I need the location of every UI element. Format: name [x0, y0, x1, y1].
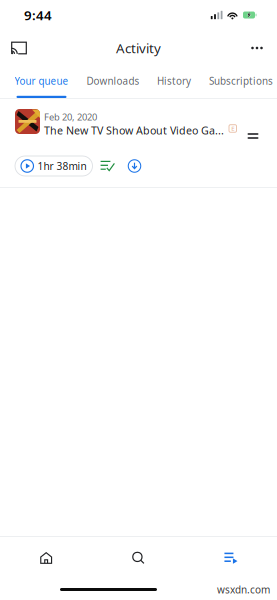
button[interactable]: Reorder: [244, 121, 262, 151]
button[interactable]: Added to queue: [95, 156, 119, 176]
staticText: wsxdn.com: [217, 583, 270, 596]
staticText: E: [231, 124, 234, 133]
button[interactable]: Your queue: [0, 66, 83, 98]
button[interactable]: Activity: [185, 537, 277, 579]
button[interactable]: Downloads: [83, 66, 143, 98]
staticText: Activity: [116, 39, 161, 57]
button[interactable]: 1hr 38min: [15, 156, 92, 176]
staticText: Feb 20, 2020: [44, 110, 97, 123]
button[interactable]: Subscriptions: [205, 66, 277, 98]
button[interactable]: Search: [92, 537, 185, 579]
staticText: 9:44: [24, 6, 52, 24]
staticText: Downloads: [86, 74, 139, 88]
button[interactable]: Cast: [1, 30, 37, 66]
button[interactable]: More options: [239, 30, 275, 66]
staticText: The New TV Show About Video Ga...: [44, 123, 224, 138]
button[interactable]: Download: [123, 156, 145, 176]
staticText: Subscriptions: [209, 74, 273, 88]
button[interactable]: History: [143, 66, 205, 98]
staticText: 1hr 38min: [37, 159, 86, 173]
staticText: Your queue: [14, 74, 68, 88]
button[interactable]: Home: [0, 537, 92, 579]
staticText: History: [157, 74, 191, 88]
